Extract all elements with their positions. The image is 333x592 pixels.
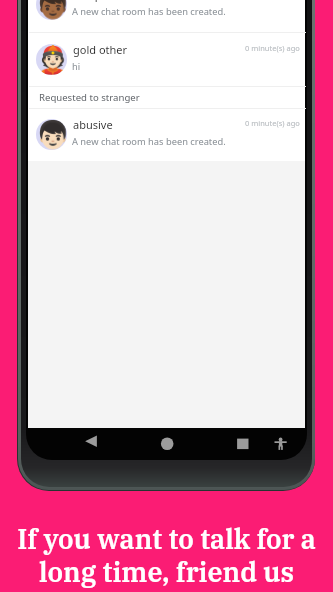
staticText: Requested to stranger <box>39 91 140 104</box>
button[interactable]: 👦🏾 <box>28 0 305 32</box>
button[interactable]: Recent apps <box>230 431 256 457</box>
staticText: If you want to talk for a long time, fri… <box>0 521 333 589</box>
staticText: A new chat room has been created. <box>72 135 226 148</box>
staticText: hi <box>72 60 81 73</box>
staticText: 👦🏾 <box>36 0 67 20</box>
button[interactable]: Home <box>154 431 180 457</box>
button[interactable]: 👦🏻 <box>28 108 305 161</box>
button[interactable]: Requested to stranger <box>28 86 305 108</box>
staticText: 👲🏻 <box>36 44 67 75</box>
button[interactable]: Accessibility <box>268 431 294 457</box>
staticText: sample <box>73 0 111 2</box>
button[interactable]: Back <box>78 431 104 457</box>
staticText: A new chat room has been created. <box>72 5 226 18</box>
staticText: 👦🏻 <box>36 119 67 150</box>
staticText: abusive <box>73 117 113 132</box>
staticText: 0 minute(s) ago <box>245 43 300 53</box>
button[interactable]: 👲🏻 <box>28 32 305 87</box>
staticText: 0 minute(s) ago <box>245 118 300 128</box>
staticText: gold other <box>73 42 128 57</box>
